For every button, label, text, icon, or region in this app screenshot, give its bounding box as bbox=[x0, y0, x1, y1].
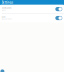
button[interactable]: Notifications bbox=[0, 5, 64, 13]
button[interactable]: Sync bbox=[0, 14, 64, 22]
button[interactable]: Home bbox=[0, 69, 4, 72]
staticText: Notifications bbox=[2, 7, 12, 9]
staticText: Alerts bbox=[2, 9, 6, 11]
staticText: Sync bbox=[2, 16, 6, 18]
staticText: Settings bbox=[2, 1, 13, 4]
